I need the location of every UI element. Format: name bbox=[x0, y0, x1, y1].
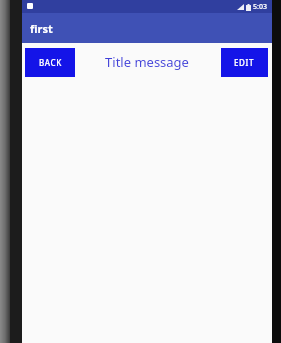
button[interactable]: BACK bbox=[25, 48, 75, 77]
staticText: BACK bbox=[39, 57, 62, 68]
staticText: first bbox=[30, 21, 53, 36]
staticText: EDIT bbox=[234, 57, 255, 68]
button[interactable]: EDIT bbox=[221, 48, 268, 77]
staticText: Title message bbox=[105, 53, 189, 71]
staticText: 5:03 bbox=[253, 2, 267, 12]
